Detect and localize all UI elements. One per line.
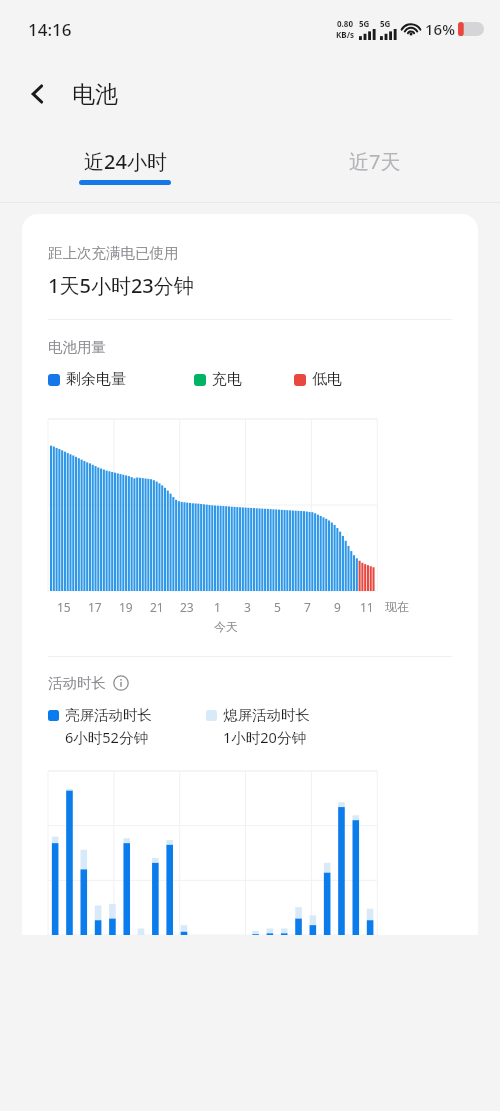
staticText: 电池 [72, 80, 118, 109]
staticText: 剩余电量 [66, 370, 126, 389]
staticText: 亮屏活动时长 [65, 706, 152, 724]
staticText: 3 [244, 599, 251, 615]
staticText: 5G [359, 18, 370, 29]
staticText: 1天5小时23分钟 [48, 272, 194, 299]
staticText: 1 [214, 599, 221, 615]
staticText: 21 [150, 599, 164, 615]
button[interactable]: 返回 [16, 72, 60, 116]
button[interactable]: 近24小时 [0, 130, 250, 202]
staticText: 6小时52分钟 [65, 727, 148, 747]
button[interactable]: 近7天 [250, 130, 500, 202]
staticText: 5G [380, 18, 391, 29]
staticText: 现在 [385, 599, 409, 614]
staticText: 1小时20分钟 [223, 727, 306, 747]
staticText: 低电 [312, 370, 342, 389]
staticText: 7 [304, 599, 311, 615]
staticText: 5 [274, 599, 281, 615]
staticText: 近24小时 [84, 148, 167, 175]
staticText: 17 [88, 599, 102, 615]
staticText: 0.80 [337, 18, 353, 29]
staticText: 15 [57, 599, 71, 615]
staticText: 电池用量 [48, 338, 106, 356]
staticText: 23 [180, 599, 194, 615]
staticText: 近7天 [349, 148, 401, 175]
staticText: 9 [334, 599, 341, 615]
staticText: 11 [360, 599, 374, 615]
staticText: 活动时长 [48, 674, 106, 692]
staticText: 16% [425, 19, 455, 39]
staticText: KB/s [336, 29, 354, 40]
staticText: 14:16 [28, 18, 72, 41]
button[interactable]: 信息 [113, 675, 129, 691]
staticText: 今天 [214, 619, 238, 634]
staticText: 充电 [212, 370, 242, 389]
staticText: 19 [119, 599, 133, 615]
staticText: 距上次充满电已使用 [48, 244, 179, 262]
staticText: 熄屏活动时长 [223, 706, 310, 724]
